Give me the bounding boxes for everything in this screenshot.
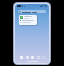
button[interactable] bbox=[19, 15, 37, 25]
button[interactable]: Browser bbox=[36, 55, 40, 59]
button[interactable]: Phone bbox=[19, 55, 23, 59]
button[interactable]: Camera bbox=[30, 55, 34, 59]
button[interactable]: Messages bbox=[25, 55, 29, 59]
button[interactable]: Apps bbox=[41, 55, 45, 59]
button[interactable]: Search bbox=[18, 10, 46, 13]
